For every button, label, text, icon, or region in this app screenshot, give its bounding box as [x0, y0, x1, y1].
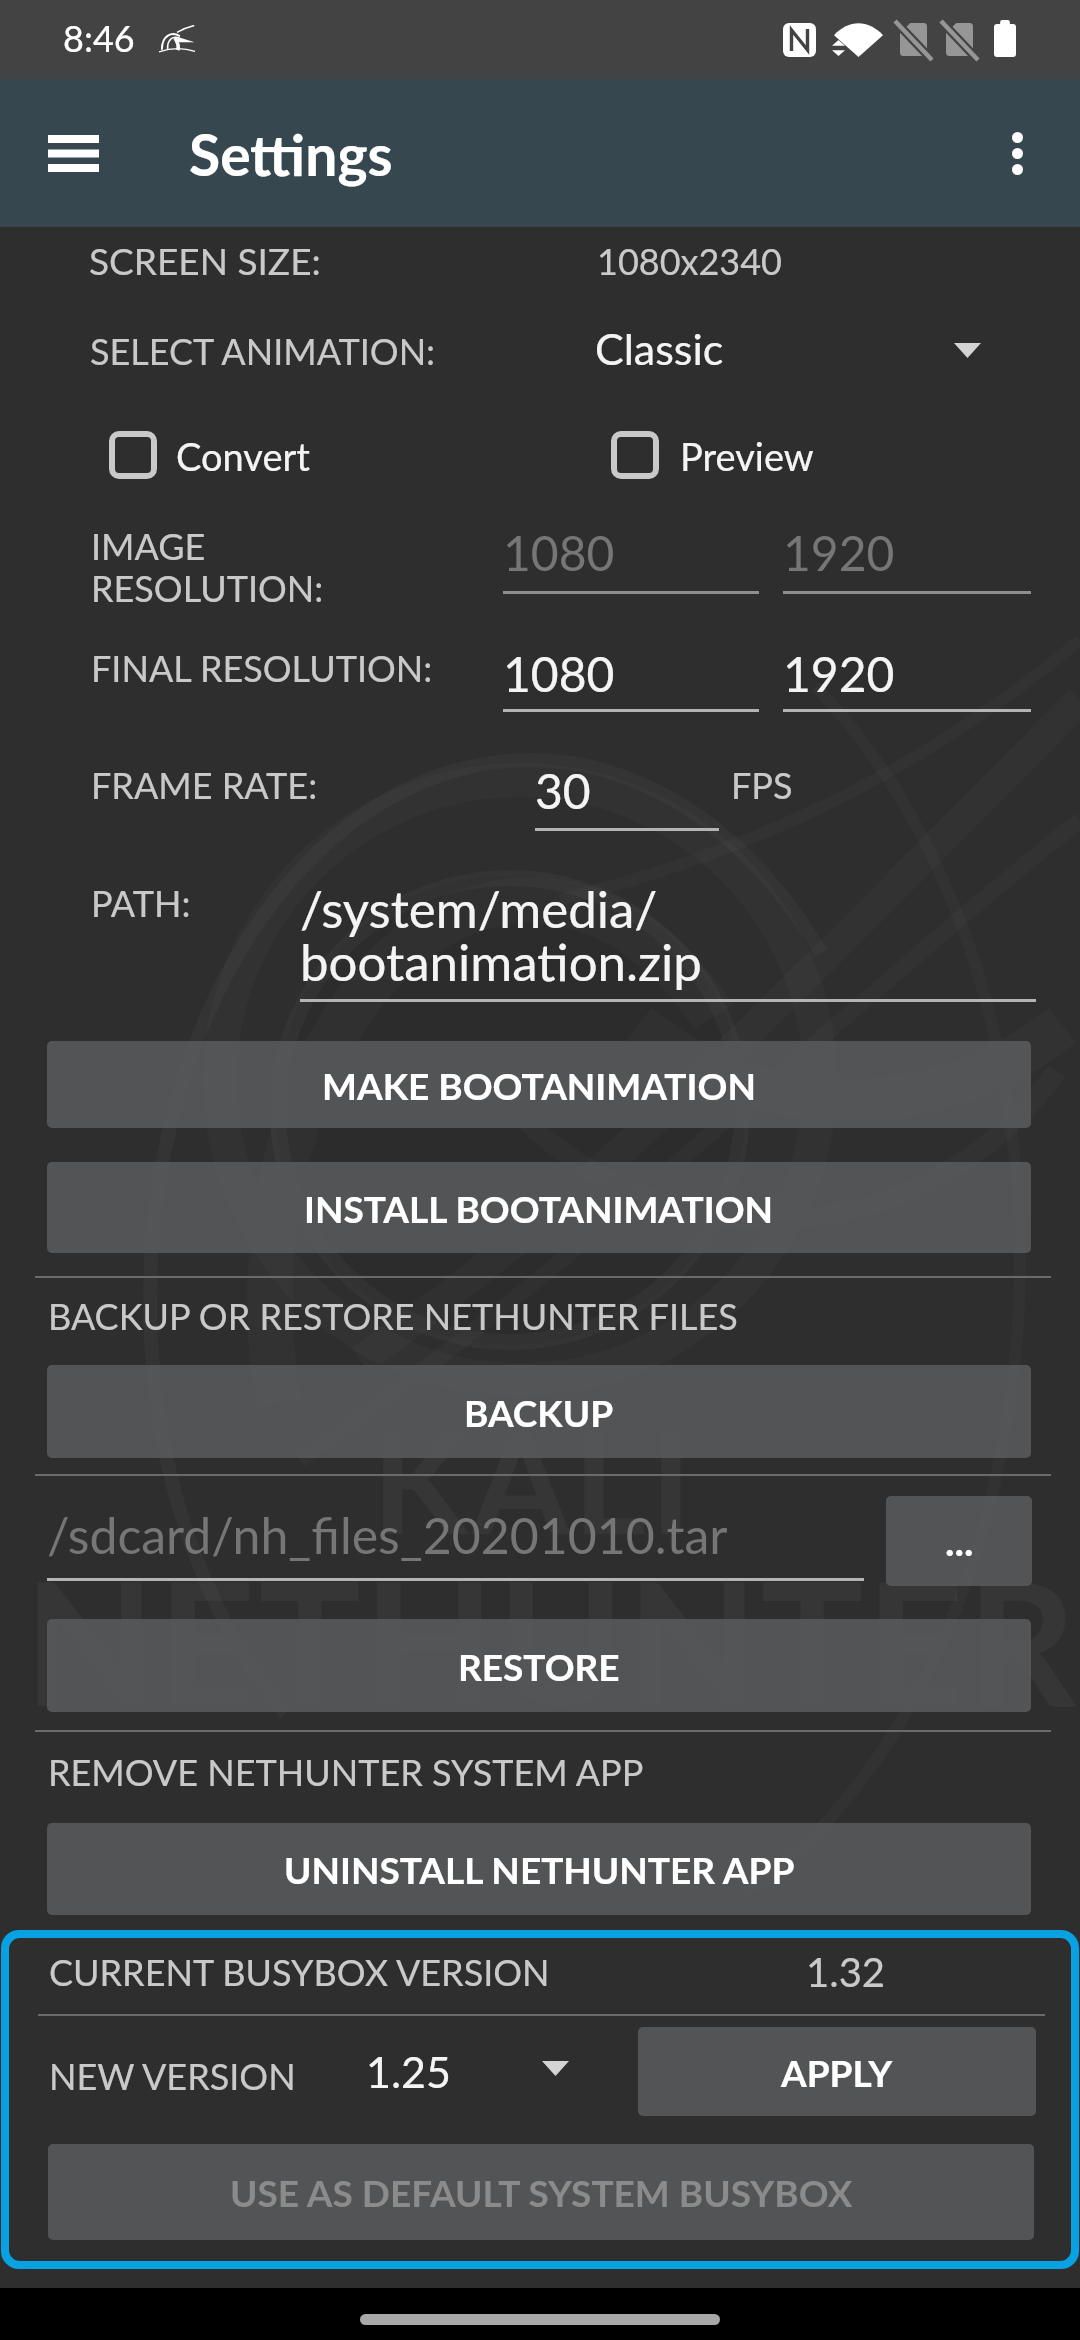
- staticText: 30: [535, 762, 591, 820]
- staticText: 1.25: [366, 2046, 451, 2098]
- staticText: Classic: [595, 323, 724, 375]
- staticText: FRAME RATE:: [91, 763, 318, 806]
- staticText: 1080x2340: [597, 239, 782, 282]
- staticText: Settings: [189, 120, 393, 188]
- staticText: NEW VERSION: [49, 2054, 296, 2097]
- staticText: 8:46: [63, 16, 135, 59]
- staticText: IMAGE: [91, 524, 206, 567]
- staticText: Convert: [176, 433, 310, 479]
- staticText: SELECT ANIMATION:: [90, 329, 436, 372]
- button[interactable]: APPLY: [638, 2027, 1036, 2116]
- staticText: ...: [945, 1517, 974, 1565]
- button[interactable]: BACKUP: [47, 1365, 1031, 1458]
- button[interactable]: UNINSTALL NETHUNTER APP: [47, 1823, 1031, 1915]
- staticText: 1080: [503, 524, 615, 582]
- staticText: MAKE BOOTANIMATION: [322, 1063, 756, 1107]
- staticText: Preview: [680, 433, 814, 479]
- button[interactable]: Select animation: [920, 310, 1016, 390]
- staticText: 1.32: [806, 1948, 886, 1996]
- button[interactable]: Preview: [607, 425, 817, 487]
- staticText: USE AS DEFAULT SYSTEM BUSYBOX: [230, 2170, 853, 2214]
- staticText: RESOLUTION:: [91, 566, 324, 609]
- staticText: SCREEN SIZE:: [89, 238, 321, 282]
- staticText: 1920: [783, 524, 895, 582]
- button[interactable]: USE AS DEFAULT SYSTEM BUSYBOX: [48, 2144, 1034, 2240]
- staticText: FPS: [731, 763, 793, 806]
- button[interactable]: Browse for file: [886, 1496, 1032, 1586]
- staticText: CURRENT BUSYBOX VERSION: [49, 1950, 550, 1993]
- button[interactable]: RESTORE: [47, 1619, 1031, 1712]
- button[interactable]: MAKE BOOTANIMATION: [47, 1041, 1031, 1128]
- staticText: BACKUP: [464, 1390, 614, 1434]
- button[interactable]: INSTALL BOOTANIMATION: [47, 1162, 1031, 1253]
- staticText: REMOVE NETHUNTER SYSTEM APP: [48, 1750, 644, 1793]
- staticText: INSTALL BOOTANIMATION: [304, 1186, 774, 1230]
- staticText: /sdcard/nh_files_20201010.tar: [47, 1505, 728, 1565]
- staticText: NETHUNTER: [24, 1538, 1079, 1742]
- button[interactable]: More options: [975, 79, 1071, 227]
- staticText: bootanimation.zip: [300, 931, 702, 992]
- staticText: APPLY: [781, 2050, 893, 2094]
- staticText: 1920: [783, 645, 895, 703]
- button[interactable]: Convert: [105, 425, 320, 487]
- staticText: 1080: [503, 645, 615, 703]
- staticText: KALI: [372, 1396, 696, 1564]
- staticText: FINAL RESOLUTION:: [91, 646, 433, 689]
- button[interactable]: Open navigation drawer: [24, 79, 122, 227]
- button[interactable]: Select busybox version: [509, 2028, 603, 2108]
- staticText: /system/media/: [300, 878, 658, 939]
- staticText: UNINSTALL NETHUNTER APP: [284, 1847, 795, 1891]
- staticText: BACKUP OR RESTORE NETHUNTER FILES: [48, 1294, 738, 1337]
- staticText: PATH:: [91, 881, 191, 924]
- staticText: RESTORE: [458, 1644, 620, 1688]
